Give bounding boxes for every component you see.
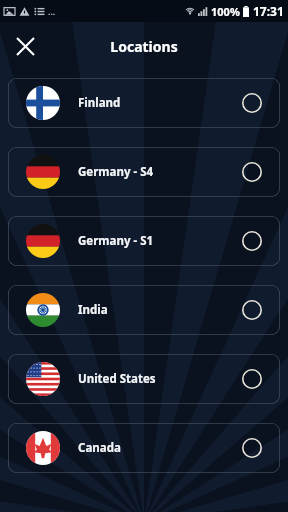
button[interactable]: Finland [8, 78, 280, 128]
button[interactable]: Canada [8, 423, 280, 473]
staticText: Germany - S1 [78, 233, 154, 249]
staticText: United States [78, 371, 156, 387]
staticText: 17:31 [253, 3, 284, 19]
button[interactable]: Close [10, 31, 40, 61]
staticText: Finland [78, 95, 121, 111]
button[interactable]: United States [8, 354, 280, 404]
button[interactable]: Germany - S4 [8, 147, 280, 197]
staticText: Canada [78, 440, 121, 456]
staticText: ... [48, 5, 56, 17]
staticText: Locations [110, 37, 178, 56]
button[interactable]: India [8, 285, 280, 335]
staticText: India [78, 302, 108, 318]
staticText: Germany - S4 [78, 164, 154, 180]
staticText: 100% [211, 4, 240, 19]
button[interactable]: Germany - S1 [8, 216, 280, 266]
